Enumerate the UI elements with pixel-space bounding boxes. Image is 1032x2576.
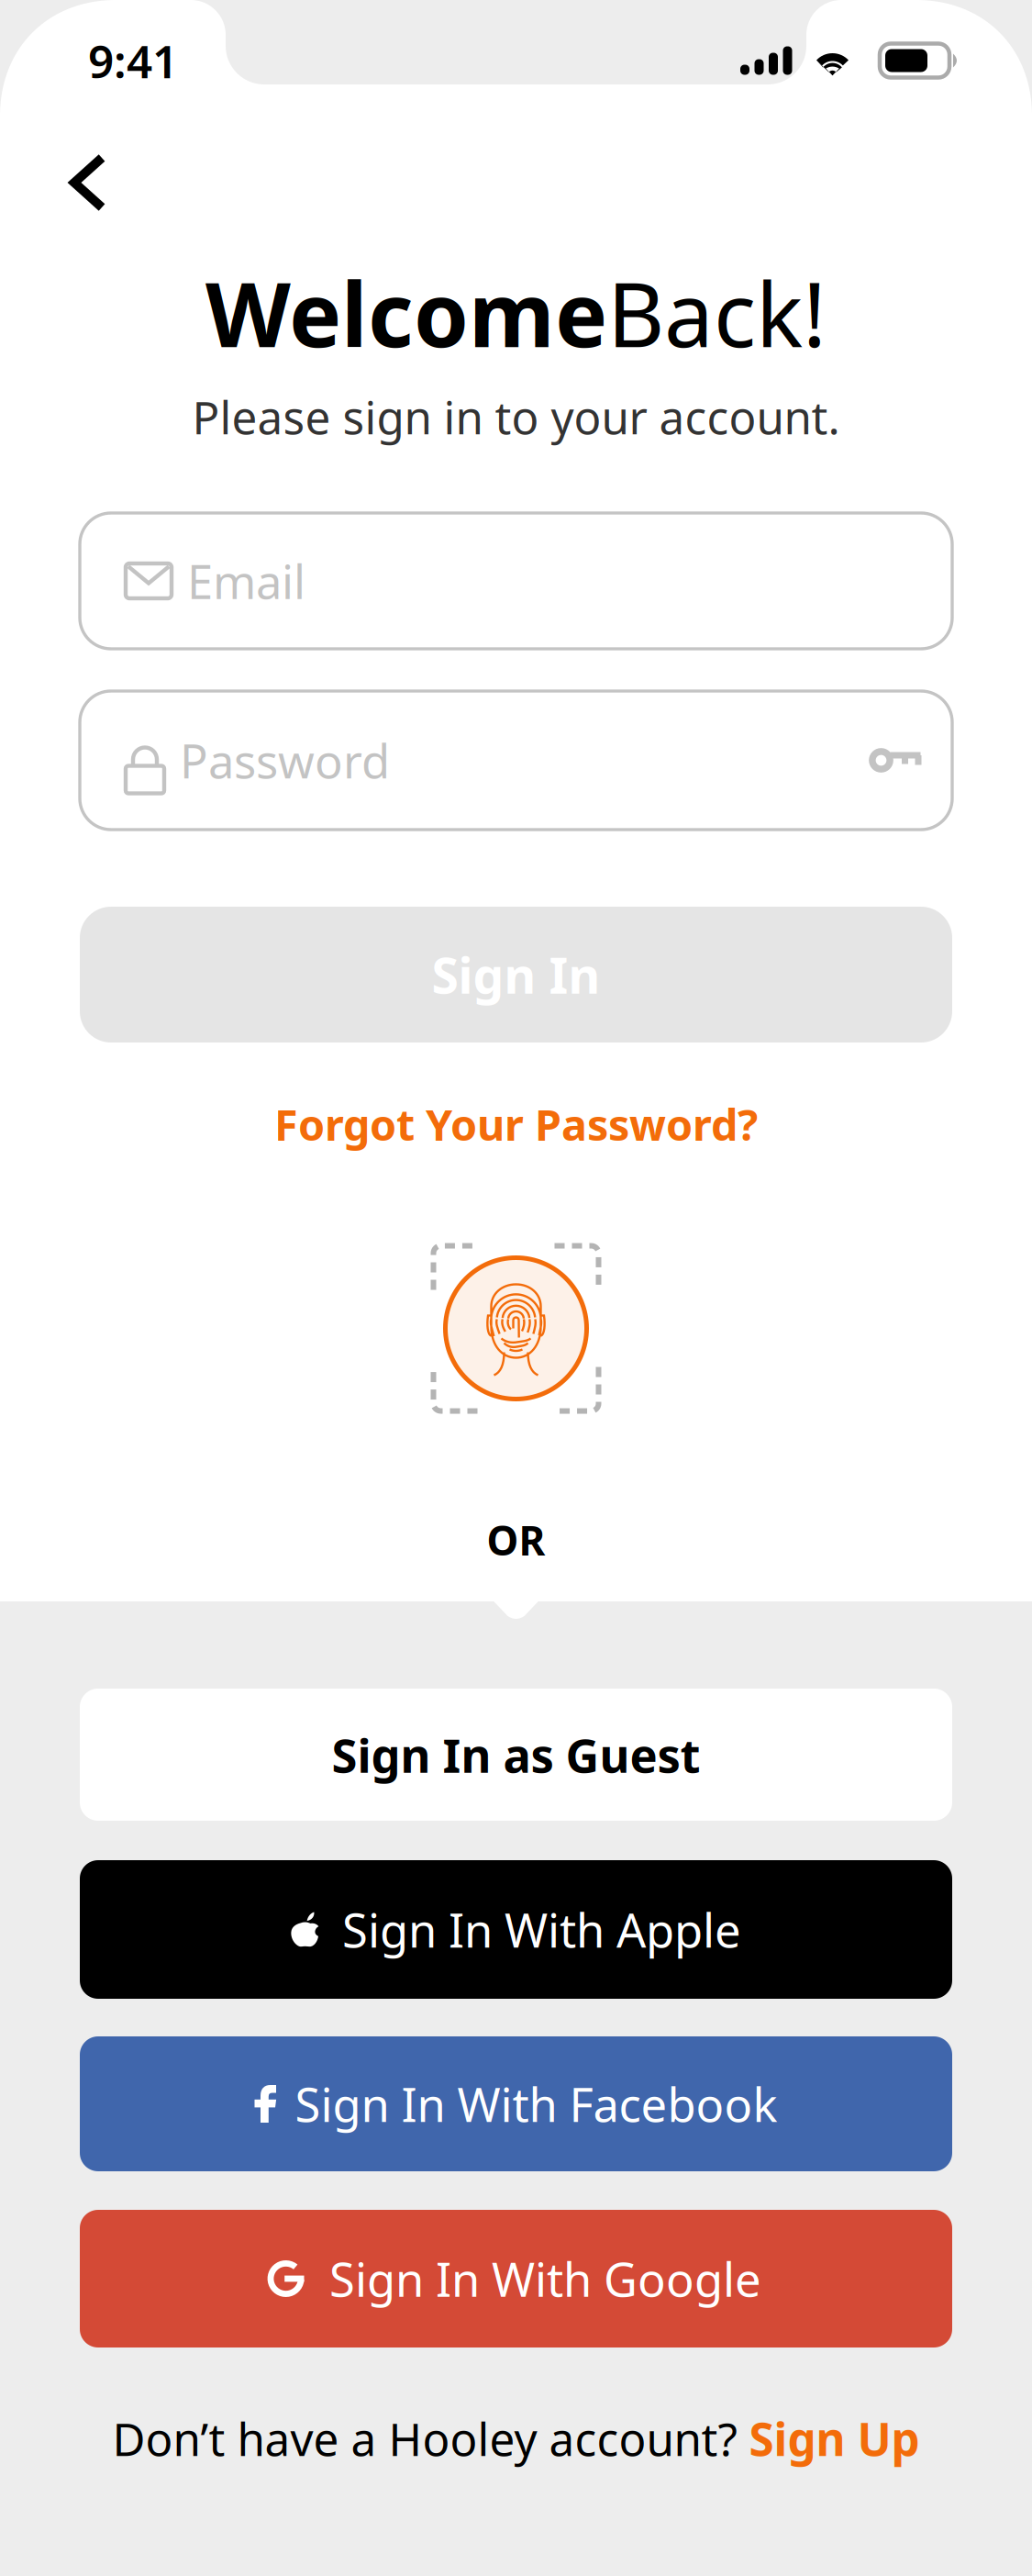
staticText: Sign In With Apple [342,1899,741,1960]
button[interactable]: Sign In [80,907,952,1043]
staticText: OR [487,1513,545,1567]
staticText: Sign In With Google [329,2248,761,2310]
staticText: Password [180,729,390,791]
button[interactable]: Forgot Your Password? [0,1083,1032,1165]
staticText: Sign Up [749,2408,920,2468]
staticText: Sign In With Facebook [295,2073,777,2135]
button[interactable]: Sign In With Google [80,2210,952,2347]
button[interactable]: Sign In as Guest [80,1689,952,1821]
button[interactable]: Don’t have a Hooley account? [0,2397,1032,2480]
staticText: 9:41 [88,30,178,91]
staticText: Please sign in to your account. [192,387,840,447]
staticText: Back! [607,254,827,371]
staticText: Forgot Your Password? [274,1096,758,1153]
staticText: Welcome [205,254,607,371]
button[interactable]: Sign In With Facebook [80,2036,952,2171]
button[interactable]: Back [74,158,104,209]
staticText: Don’t have a Hooley account? [112,2408,749,2468]
staticText: Email [187,550,305,612]
staticText: Sign In [432,942,600,1007]
staticText: Sign In as Guest [332,1724,700,1786]
button[interactable]: Sign In With Apple [80,1860,952,1999]
